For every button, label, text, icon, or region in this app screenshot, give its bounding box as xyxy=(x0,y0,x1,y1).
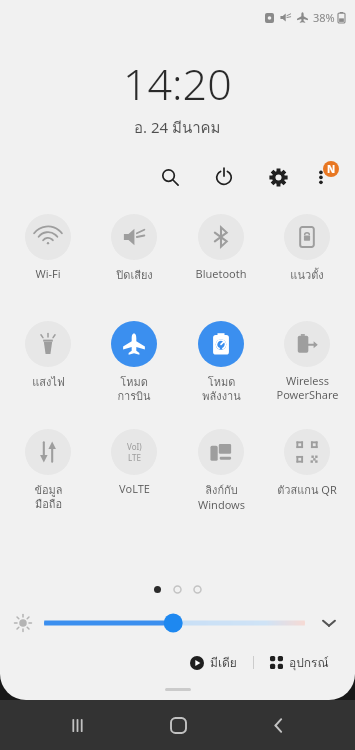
button[interactable]: Expand xyxy=(313,607,345,639)
staticText: 14:20 xyxy=(123,54,232,113)
staticText: 38% xyxy=(313,10,335,25)
staticText: VoLTE xyxy=(119,481,150,496)
staticText: ข้อมูล มือถือ xyxy=(34,481,63,513)
staticText: Wireless PowerShare xyxy=(276,373,339,402)
staticText: LTE xyxy=(128,452,141,463)
button[interactable]: Wi-Fi xyxy=(6,214,90,281)
button[interactable]: Mute xyxy=(92,214,176,283)
staticText: VoI) xyxy=(127,441,142,452)
staticText: โหมด การบิน xyxy=(117,373,151,405)
button[interactable]: Link to Windows xyxy=(179,429,263,512)
button[interactable]: Back xyxy=(254,701,302,749)
button[interactable]: Settings xyxy=(259,158,297,196)
staticText: แนวตั้ง xyxy=(290,266,324,283)
staticText: ลิงก์กับ Windows xyxy=(198,481,245,512)
staticText: Wi-Fi xyxy=(35,266,61,281)
button[interactable]: Bluetooth xyxy=(179,214,263,281)
staticText: Bluetooth xyxy=(195,266,247,281)
button[interactable]: Home xyxy=(154,701,202,749)
button[interactable]: More options xyxy=(305,158,343,196)
button[interactable]: Power mode xyxy=(179,321,263,405)
button[interactable]: QR scanner xyxy=(265,429,349,498)
button[interactable]: Recent apps xyxy=(53,701,101,749)
button[interactable]: มีเดีย xyxy=(184,649,243,676)
button[interactable]: Flashlight xyxy=(6,321,90,390)
staticText: อ. 24 มีนาคม xyxy=(134,116,221,140)
button[interactable]: Brightness xyxy=(44,610,305,636)
staticText: N xyxy=(327,162,336,176)
button[interactable]: Power off xyxy=(205,158,243,196)
staticText: มีเดีย xyxy=(210,653,237,672)
staticText: โหมด พลังงาน xyxy=(202,373,241,405)
button[interactable]: Mobile data xyxy=(6,429,90,513)
button[interactable]: อุปกรณ์ xyxy=(264,649,335,676)
button[interactable]: Wireless PowerShare xyxy=(265,321,349,402)
button[interactable]: VoLTE xyxy=(92,429,176,496)
staticText: ปิดเสียง xyxy=(116,266,153,283)
staticText: ตัวสแกน QR xyxy=(277,481,337,498)
staticText: แสงไฟ xyxy=(32,373,65,390)
button[interactable]: Portrait lock xyxy=(265,214,349,283)
staticText: อุปกรณ์ xyxy=(289,653,329,672)
button[interactable]: Search xyxy=(151,158,189,196)
button[interactable]: Airplane mode xyxy=(92,321,176,405)
